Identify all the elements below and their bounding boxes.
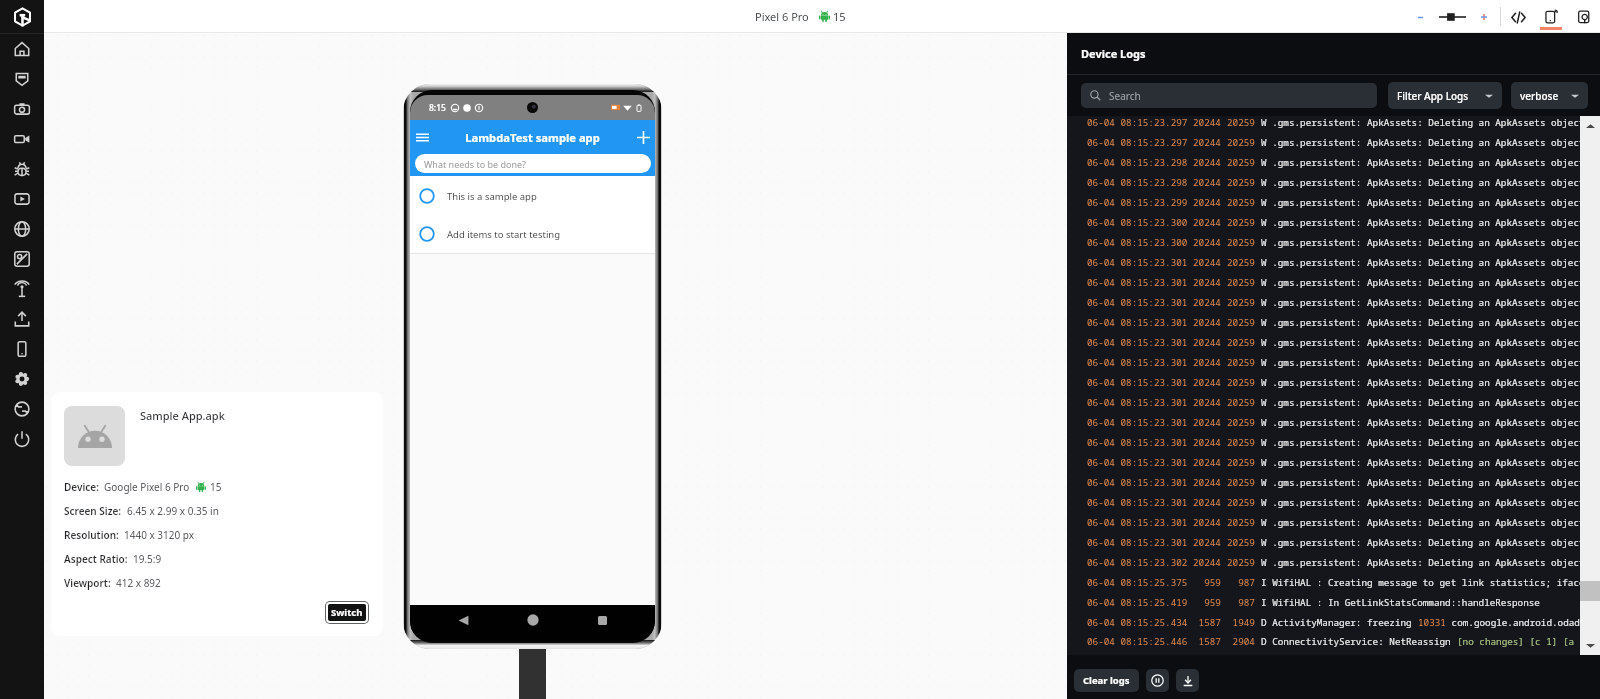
staticText: Screen Size: xyxy=(64,504,122,518)
button[interactable]: Bug report xyxy=(1572,5,1596,29)
button[interactable]: Zoom out xyxy=(1412,9,1428,25)
button[interactable]: Device xyxy=(0,334,44,364)
staticText: 06-04 08:15:23.301 xyxy=(1087,416,1193,429)
staticText: 06-04 08:15:23.301 xyxy=(1087,276,1193,289)
staticText: 20259 xyxy=(1227,356,1261,369)
staticText: 20259 xyxy=(1227,416,1261,429)
staticText: W .gms.persistent: ApkAssets: Deleting a… xyxy=(1261,456,1580,469)
staticText: 20244 xyxy=(1193,216,1227,229)
button[interactable]: This is a sample app xyxy=(410,177,655,215)
staticText: 20259 xyxy=(1227,276,1261,289)
button[interactable]: Device logs xyxy=(1539,0,1563,33)
staticText: 20259 xyxy=(1227,536,1261,549)
staticText: W .gms.persistent: ApkAssets: Deleting a… xyxy=(1261,476,1580,489)
staticText: W .gms.persistent: ApkAssets: Deleting a… xyxy=(1261,256,1580,269)
button[interactable]: Sync xyxy=(0,394,44,424)
staticText: I WifiHAL : In GetLinkStatsCommand::hand… xyxy=(1261,596,1540,609)
staticText: verbose xyxy=(1520,89,1559,103)
button[interactable]: Back xyxy=(446,605,480,635)
staticText: 959 xyxy=(1193,596,1227,609)
button[interactable]: Scroll up xyxy=(1580,116,1600,136)
staticText: W .gms.persistent: ApkAssets: Deleting a… xyxy=(1261,376,1580,389)
staticText: 20259 xyxy=(1227,456,1261,469)
staticText: 8:15 xyxy=(429,102,446,114)
staticText: 2904 xyxy=(1227,635,1261,648)
button[interactable]: Menu xyxy=(411,126,433,148)
button[interactable]: Network xyxy=(0,274,44,304)
button[interactable]: LambdaTest home xyxy=(0,0,44,33)
staticText: 06-04 08:15:23.301 xyxy=(1087,536,1193,549)
staticText: 06-04 08:15:23.301 xyxy=(1087,356,1193,369)
button[interactable]: Recent apps xyxy=(585,605,619,635)
button[interactable]: Screenshot xyxy=(0,94,44,124)
button[interactable]: Switch xyxy=(325,601,369,624)
button[interactable]: Power xyxy=(0,424,44,454)
button[interactable]: Pause logs xyxy=(1146,669,1169,692)
staticText: Pixel 6 Pro xyxy=(755,9,809,24)
staticText: 20259 xyxy=(1227,436,1261,449)
staticText: 20259 xyxy=(1227,136,1261,149)
staticText: Resolution: xyxy=(64,528,119,542)
staticText: 20244 xyxy=(1193,136,1227,149)
button[interactable]: Add item xyxy=(632,126,654,148)
staticText: 20259 xyxy=(1227,376,1261,389)
staticText: W .gms.persistent: ApkAssets: Deleting a… xyxy=(1261,336,1580,349)
button[interactable]: verbose xyxy=(1511,82,1588,109)
staticText: 20259 xyxy=(1227,256,1261,269)
button[interactable]: Inspect code xyxy=(1506,5,1530,29)
staticText: 10331 xyxy=(1418,616,1446,629)
button[interactable]: Zoom level xyxy=(1438,8,1466,26)
staticText: This is a sample app xyxy=(447,190,537,203)
button[interactable]: Filter App Logs xyxy=(1388,82,1502,109)
staticText: Clear logs xyxy=(1083,674,1130,687)
staticText: 987 xyxy=(1227,596,1261,609)
button[interactable]: Upload xyxy=(0,304,44,334)
staticText: 20244 xyxy=(1193,316,1227,329)
staticText: 20244 xyxy=(1193,536,1227,549)
staticText: Switch xyxy=(331,606,363,619)
button[interactable]: Search xyxy=(1081,83,1377,108)
button[interactable]: Scroll down xyxy=(1580,635,1600,655)
staticText: 20244 xyxy=(1193,516,1227,529)
staticText: 06-04 08:15:23.299 xyxy=(1087,196,1193,209)
staticText: 06-04 08:15:23.301 xyxy=(1087,376,1193,389)
staticText: 20244 xyxy=(1193,256,1227,269)
staticText: 06-04 08:15:23.301 xyxy=(1087,436,1193,449)
button[interactable]: Bug xyxy=(0,154,44,184)
staticText: Aspect Ratio: xyxy=(64,552,128,566)
staticText: W .gms.persistent: ApkAssets: Deleting a… xyxy=(1261,536,1580,549)
button[interactable]: What needs to be done? xyxy=(415,154,651,173)
staticText: 06-04 08:15:25.375 xyxy=(1087,576,1193,589)
staticText: 20259 xyxy=(1227,336,1261,349)
button[interactable]: Web xyxy=(0,214,44,244)
button[interactable]: Geolocation xyxy=(0,244,44,274)
staticText: Google Pixel 6 Pro xyxy=(104,480,190,494)
staticText: 20244 xyxy=(1193,436,1227,449)
staticText: 06-04 08:15:23.298 xyxy=(1087,156,1193,169)
button[interactable]: Settings xyxy=(0,364,44,394)
staticText: W .gms.persistent: ApkAssets: Deleting a… xyxy=(1261,416,1580,429)
button[interactable]: Home xyxy=(0,34,44,64)
button[interactable]: Video xyxy=(0,124,44,154)
staticText: com.google.android.odad xyxy=(1446,616,1580,629)
button[interactable]: Clear logs xyxy=(1074,669,1139,692)
staticText: 15 xyxy=(833,9,846,24)
staticText: 06-04 08:15:23.297 xyxy=(1087,136,1193,149)
staticText: Viewport: xyxy=(64,576,111,590)
staticText: 20244 xyxy=(1193,276,1227,289)
button[interactable]: Home xyxy=(516,605,550,635)
button[interactable]: Play xyxy=(0,184,44,214)
staticText: Add items to start testing xyxy=(447,228,561,241)
staticText: 20244 xyxy=(1193,416,1227,429)
staticText: 06-04 08:15:23.301 xyxy=(1087,456,1193,469)
staticText: 20259 xyxy=(1227,516,1261,529)
staticText: 20259 xyxy=(1227,176,1261,189)
staticText: W .gms.persistent: ApkAssets: Deleting a… xyxy=(1261,196,1580,209)
button[interactable]: Zoom in xyxy=(1476,9,1492,25)
staticText: I WifiHAL : Creating message to get link… xyxy=(1261,576,1580,589)
button[interactable]: Download logs xyxy=(1176,669,1199,692)
staticText: W .gms.persistent: ApkAssets: Deleting a… xyxy=(1261,136,1580,149)
button[interactable]: App automation xyxy=(0,64,44,94)
staticText: 20259 xyxy=(1227,296,1261,309)
button[interactable]: Add items to start testing xyxy=(410,215,655,253)
